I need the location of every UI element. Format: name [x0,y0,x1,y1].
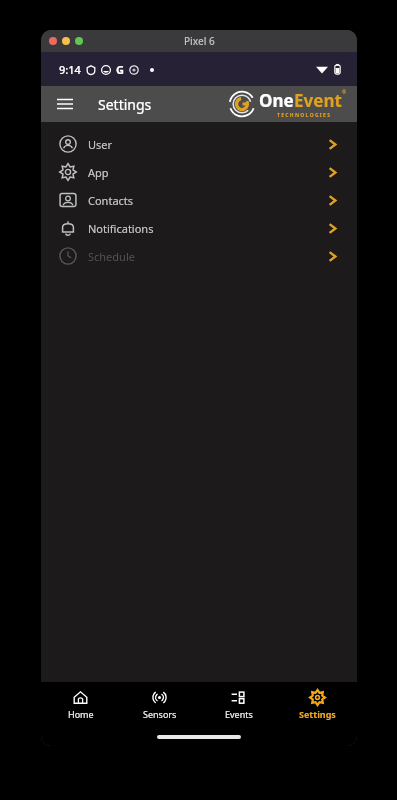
staticText: Event [294,89,342,112]
button[interactable]: OneEvent Technologies [229,89,347,119]
staticText: T E C H N O L O G I E S [277,112,330,119]
button[interactable]: Contacts [41,186,357,214]
staticText: Schedule [88,249,135,264]
button[interactable]: Minimize [62,37,70,45]
button[interactable]: Maximize [75,37,83,45]
staticText: Home [68,708,94,720]
button[interactable]: Notifications [41,214,357,242]
button[interactable]: App [41,158,357,186]
button[interactable]: Home [41,682,120,728]
button[interactable]: Settings [278,682,357,728]
button[interactable]: Open navigation menu [51,90,79,118]
button[interactable]: Events [199,682,278,728]
staticText: Contacts [88,193,134,208]
staticText: Sensors [143,708,177,720]
staticText: Notifications [88,221,154,236]
button[interactable]: User [41,130,357,158]
staticText: Settings [98,95,152,114]
staticText: User [88,137,113,152]
staticText: Events [225,708,253,720]
staticText: One [259,89,294,112]
staticText: G [116,62,124,77]
button[interactable]: Sensors [120,682,199,728]
button[interactable]: Schedule [41,242,357,270]
staticText: Pixel 6 [184,34,215,48]
staticText: 9:14 [59,62,81,77]
staticText: Settings [299,708,336,720]
button[interactable]: Close [49,37,57,45]
staticText: App [88,165,109,180]
staticText: ® [342,89,347,96]
